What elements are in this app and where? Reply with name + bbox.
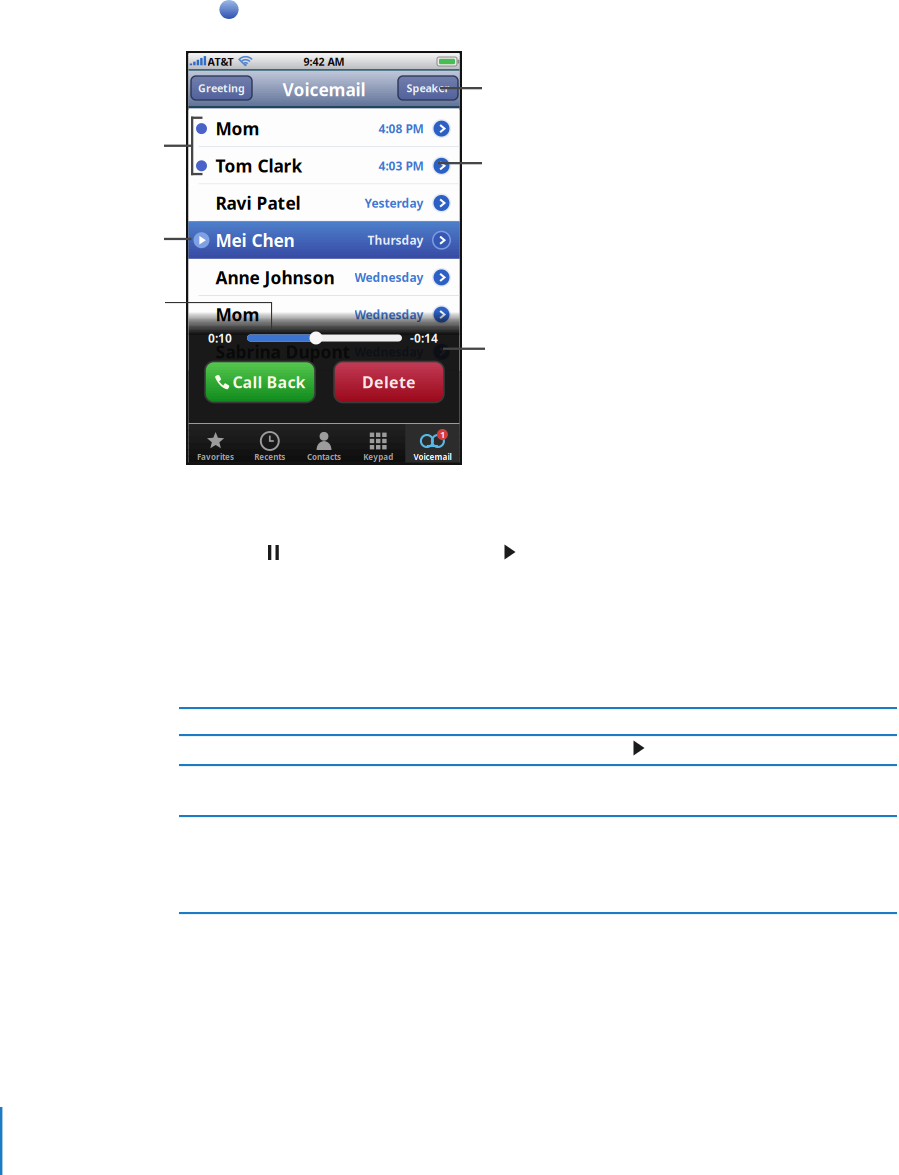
button[interactable]: Favorites — [188, 424, 243, 462]
button[interactable]: Call Back — [205, 361, 315, 402]
staticText: Anne Johnson — [215, 266, 334, 289]
staticText: Call Back — [232, 371, 305, 393]
staticText: AT&T — [207, 54, 233, 69]
button[interactable]: Delete — [334, 361, 444, 402]
button[interactable]: Mom — [0, 0, 899, 1175]
staticText: 1 — [440, 428, 445, 441]
staticText: Mei Chen — [215, 229, 294, 252]
button[interactable]: Ravi Patel — [0, 0, 899, 1175]
staticText: Wednesday — [354, 344, 423, 360]
staticText: Contacts — [307, 452, 341, 462]
button[interactable]: Anne Johnson — [0, 0, 899, 1175]
staticText: Mom — [215, 303, 259, 326]
staticText: 4:08 PM — [378, 121, 423, 136]
button[interactable]: Greeting — [191, 76, 252, 100]
staticText: Greeting — [198, 81, 245, 95]
staticText: 9:42 AM — [303, 54, 344, 69]
staticText: Keypad — [363, 452, 393, 462]
button[interactable]: Sabrina Dupont — [0, 0, 899, 1175]
staticText: Sabrina Dupont — [215, 340, 350, 363]
staticText: Ravi Patel — [215, 191, 300, 214]
button[interactable]: Mom — [0, 0, 899, 1175]
staticText: -0:14 — [410, 330, 438, 346]
button[interactable]: Contacts — [297, 424, 351, 462]
staticText: Speaker — [406, 81, 449, 95]
button[interactable]: Tom Clark — [0, 0, 899, 1175]
staticText: Thursday — [367, 232, 423, 248]
staticText: 0:10 — [208, 330, 232, 346]
staticText: Yesterday — [364, 195, 423, 211]
button[interactable]: Mei Chen — [0, 0, 899, 1175]
staticText: Voicemail — [413, 452, 451, 462]
staticText: Voicemail — [282, 78, 365, 101]
staticText: Tom Clark — [215, 154, 302, 177]
button[interactable]: Keypad — [351, 424, 405, 462]
staticText: Wednesday — [354, 269, 423, 285]
button[interactable]: Speaker — [398, 76, 458, 100]
staticText: Favorites — [197, 452, 234, 462]
staticText: Mom — [215, 117, 259, 140]
staticText: 4:03 PM — [378, 158, 423, 174]
staticText: Delete — [362, 371, 416, 393]
staticText: Recents — [254, 452, 285, 462]
button[interactable]: 1 — [405, 424, 459, 462]
staticText: Wednesday — [354, 307, 423, 322]
button[interactable]: Recents — [243, 424, 297, 462]
